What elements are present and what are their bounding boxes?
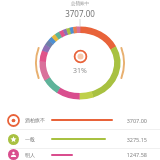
staticText: 酒柏旗不 bbox=[25, 117, 45, 123]
button[interactable]: 酒柏旗不 bbox=[0, 111, 160, 129]
other: Spending breakdown chart bbox=[32, 19, 128, 107]
staticText: 总销账中 bbox=[71, 1, 89, 7]
staticText: 1247.58 bbox=[126, 151, 147, 158]
staticText: 一般 bbox=[25, 136, 35, 142]
staticText: 3275.15 bbox=[126, 136, 147, 143]
staticText: 31% bbox=[73, 66, 87, 76]
staticText: 3707.00 bbox=[65, 8, 95, 19]
button[interactable]: 明人 bbox=[0, 149, 160, 160]
staticText: 明人 bbox=[25, 152, 35, 158]
button[interactable]: 一般 bbox=[0, 130, 160, 148]
staticText: 3707.00 bbox=[126, 117, 147, 124]
